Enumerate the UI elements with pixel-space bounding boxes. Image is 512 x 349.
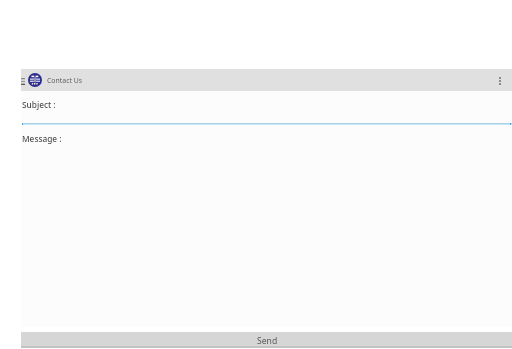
button[interactable]: Open navigation menu (13, 71, 33, 91)
button[interactable]: Send (21, 332, 512, 346)
staticText: Contact Us (47, 76, 83, 85)
button[interactable]: Subject input field (22, 110, 512, 125)
staticText: Subject : (22, 99, 56, 110)
button[interactable]: More options (492, 73, 508, 89)
staticText: Message : (22, 133, 62, 144)
staticText: Send (257, 335, 278, 347)
